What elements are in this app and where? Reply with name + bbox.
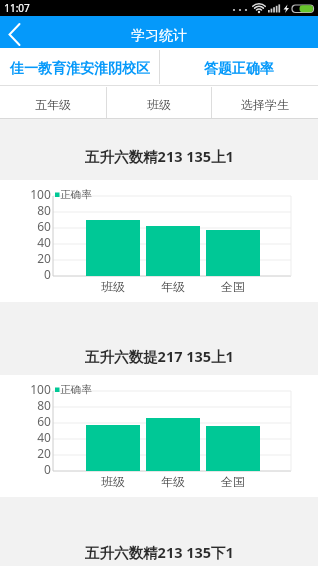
staticText: 60 (37, 413, 51, 429)
staticText: 五升六数精213 135上1 (85, 146, 234, 164)
staticText: 五升六数提217 135上1 (85, 346, 234, 364)
staticText: 100 (30, 381, 51, 397)
button[interactable]: 答题正确率 (159, 48, 318, 86)
staticText: 全国 (221, 474, 245, 489)
button[interactable]: 佳一教育淮安淮阴校区 (0, 48, 159, 86)
button[interactable]: 五年级 (0, 86, 106, 119)
staticText: 0 (44, 266, 51, 282)
staticText: 40 (37, 429, 51, 445)
staticText: 正确率 (60, 188, 92, 201)
staticText: 班级 (147, 97, 171, 112)
button[interactable] (0, 16, 36, 48)
staticText: 五年级 (35, 97, 71, 112)
staticText: 0 (44, 461, 51, 477)
staticText: 班级 (101, 279, 125, 294)
staticText: 班级 (101, 474, 125, 489)
staticText: 年级 (161, 474, 185, 489)
staticText: 60 (37, 218, 51, 234)
staticText: 80 (37, 202, 51, 218)
staticText: 全国 (221, 279, 245, 294)
staticText: 正确率 (60, 383, 92, 396)
button[interactable]: 班级 (106, 86, 212, 119)
button[interactable]: 选择学生 (212, 86, 318, 119)
staticText: 11:07 (4, 1, 30, 15)
staticText: 20 (37, 250, 51, 266)
staticText: 40 (37, 234, 51, 250)
staticText: 答题正确率 (204, 60, 274, 78)
staticText: 80 (37, 397, 51, 413)
staticText: 100 (30, 186, 51, 202)
staticText: 学习统计 (131, 27, 187, 43)
staticText: 20 (37, 445, 51, 461)
staticText: 五升六数精213 135下1 (85, 542, 234, 560)
staticText: 年级 (161, 279, 185, 294)
staticText: 选择学生 (241, 97, 289, 112)
staticText: 佳一教育淮安淮阴校区 (10, 60, 150, 78)
